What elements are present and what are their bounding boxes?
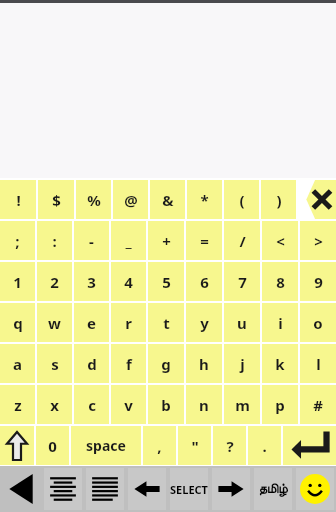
button[interactable]: m — [224, 385, 260, 424]
button[interactable]: Emoji — [296, 468, 334, 510]
button[interactable]: u — [224, 303, 260, 342]
button[interactable]: 4 — [111, 262, 146, 301]
button[interactable]: < — [262, 221, 298, 260]
button[interactable]: தமிழ் — [254, 468, 292, 510]
button[interactable]: 5 — [148, 262, 184, 301]
button[interactable]: e — [74, 303, 109, 342]
button[interactable]: z — [0, 385, 35, 424]
button[interactable]: > — [300, 221, 336, 260]
staticText: 4 — [124, 272, 133, 292]
button[interactable]: v — [111, 385, 146, 424]
button[interactable]: 7 — [224, 262, 260, 301]
staticText: ! — [16, 190, 21, 210]
staticText: r — [125, 313, 132, 333]
staticText: @ — [124, 190, 138, 210]
button[interactable]: , — [143, 426, 176, 465]
button[interactable]: Left align — [86, 468, 124, 510]
button[interactable]: b — [148, 385, 184, 424]
staticText: u — [237, 313, 247, 333]
button[interactable]: SELECT — [170, 468, 208, 510]
button[interactable]: h — [186, 344, 222, 383]
button[interactable]: 9 — [300, 262, 336, 301]
staticText: 6 — [200, 272, 209, 292]
staticText: b — [161, 395, 171, 415]
staticText: l — [316, 354, 321, 374]
button[interactable]: p — [262, 385, 298, 424]
staticText: ) — [276, 190, 282, 210]
button[interactable]: @ — [113, 180, 148, 219]
button[interactable]: Center align — [44, 468, 82, 510]
button[interactable]: 0 — [36, 426, 69, 465]
staticText: / — [239, 231, 246, 251]
staticText: n — [199, 395, 209, 415]
button[interactable]: l — [300, 344, 336, 383]
staticText: , — [157, 436, 162, 456]
staticText: $ — [52, 190, 61, 210]
button[interactable]: + — [148, 221, 184, 260]
button[interactable]: j — [224, 344, 260, 383]
staticText: 7 — [238, 272, 247, 292]
button[interactable]: a — [0, 344, 35, 383]
staticText: - — [89, 231, 94, 251]
button[interactable]: Backspace — [298, 180, 336, 219]
button[interactable]: o — [300, 303, 336, 342]
staticText: a — [13, 354, 22, 374]
button[interactable]: r — [111, 303, 146, 342]
button[interactable]: f — [111, 344, 146, 383]
staticText: g — [161, 354, 171, 374]
button[interactable]: Back — [0, 466, 42, 512]
button[interactable]: space — [71, 426, 141, 465]
staticText: + — [162, 231, 171, 251]
button[interactable]: 8 — [262, 262, 298, 301]
button[interactable]: Shift — [0, 426, 34, 465]
button[interactable]: - — [74, 221, 109, 260]
button[interactable]: ) — [261, 180, 296, 219]
staticText: SELECT — [170, 482, 208, 497]
button[interactable]: Move right — [212, 468, 250, 510]
button[interactable]: t — [148, 303, 184, 342]
button[interactable]: d — [74, 344, 109, 383]
button[interactable]: . — [248, 426, 281, 465]
button[interactable]: = — [186, 221, 222, 260]
button[interactable]: w — [37, 303, 72, 342]
staticText: k — [275, 354, 285, 374]
button[interactable]: 6 — [186, 262, 222, 301]
button[interactable]: / — [224, 221, 260, 260]
button[interactable]: # — [300, 385, 336, 424]
staticText: v — [124, 395, 133, 415]
button[interactable]: Move left — [128, 468, 166, 510]
staticText: 1 — [13, 272, 22, 292]
button[interactable]: ! — [0, 180, 36, 219]
button[interactable]: i — [262, 303, 298, 342]
staticText: h — [199, 354, 209, 374]
button[interactable]: n — [186, 385, 222, 424]
button[interactable]: Enter — [283, 426, 336, 465]
button[interactable]: s — [37, 344, 72, 383]
button[interactable]: $ — [38, 180, 74, 219]
staticText: c — [88, 395, 96, 415]
button[interactable]: y — [186, 303, 222, 342]
button[interactable]: 3 — [74, 262, 109, 301]
button[interactable]: g — [148, 344, 184, 383]
staticText: _ — [125, 231, 132, 251]
button[interactable]: & — [150, 180, 185, 219]
button[interactable]: x — [37, 385, 72, 424]
button[interactable]: q — [0, 303, 35, 342]
button[interactable]: * — [187, 180, 222, 219]
button[interactable]: : — [37, 221, 72, 260]
button[interactable]: 2 — [37, 262, 72, 301]
button[interactable]: k — [262, 344, 298, 383]
button[interactable]: " — [178, 426, 211, 465]
button[interactable]: 1 — [0, 262, 35, 301]
button[interactable]: ( — [224, 180, 259, 219]
button[interactable]: % — [76, 180, 111, 219]
button[interactable]: ? — [213, 426, 246, 465]
staticText: q — [13, 313, 23, 333]
staticText: 8 — [276, 272, 285, 292]
button[interactable]: c — [74, 385, 109, 424]
button[interactable]: ; — [0, 221, 35, 260]
staticText: p — [275, 395, 285, 415]
staticText: ? — [226, 436, 234, 456]
staticText: 0 — [48, 436, 57, 456]
button[interactable]: _ — [111, 221, 146, 260]
